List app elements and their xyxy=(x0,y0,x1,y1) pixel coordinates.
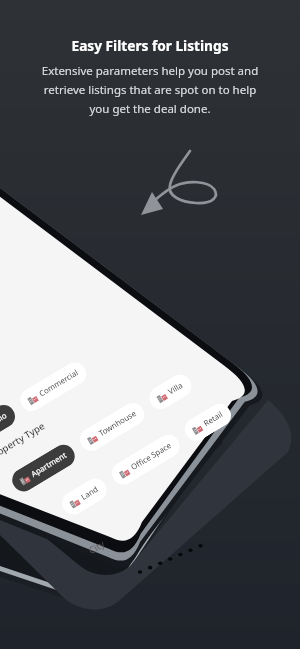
button[interactable]: Land xyxy=(58,474,111,519)
button[interactable]: Apartment xyxy=(8,440,79,496)
staticText: Studio xyxy=(0,410,9,432)
button[interactable]: Office Space xyxy=(108,430,184,489)
button[interactable]: Townhouse xyxy=(76,399,148,455)
button[interactable]: Retail xyxy=(181,400,235,445)
staticText: Townhouse xyxy=(97,408,138,439)
staticText: Land xyxy=(79,483,101,503)
staticText: Commercial xyxy=(37,367,80,399)
button[interactable]: Commercial xyxy=(16,358,90,415)
staticText: Easy Filters for Listings xyxy=(71,36,229,55)
staticText: Office Space xyxy=(129,440,174,473)
staticText: Apartment xyxy=(29,450,69,480)
button[interactable]: Villa xyxy=(145,370,195,413)
staticText: Property Type xyxy=(0,419,48,463)
button[interactable]: Studio xyxy=(0,401,19,448)
staticText: Extensive parameters help you post and r… xyxy=(36,63,264,116)
staticText: Retail xyxy=(202,409,225,429)
staticText: Villa xyxy=(166,380,186,397)
staticText: City xyxy=(86,537,107,557)
